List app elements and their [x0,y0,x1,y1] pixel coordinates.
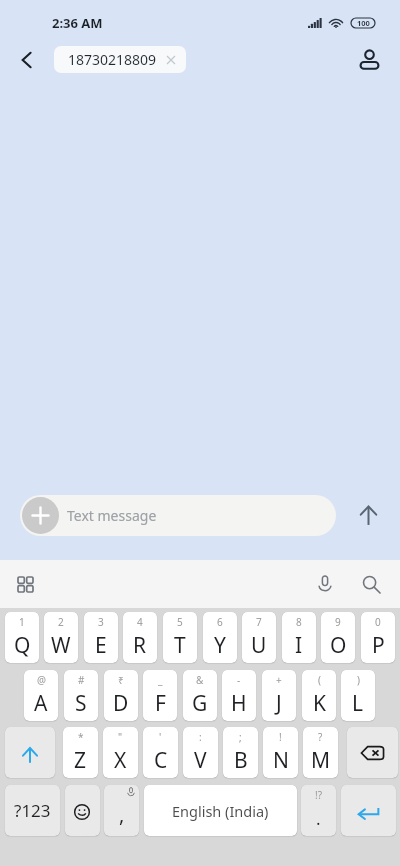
button[interactable]: 7 [242,612,276,663]
button[interactable]: 3 [84,612,118,663]
button[interactable]: ) [341,670,375,721]
button[interactable]: !? [301,785,336,836]
staticText: ?123 [14,799,51,822]
staticText: . [316,807,321,830]
button[interactable]: ₹ [104,670,138,721]
staticText: T [174,631,186,660]
button[interactable]: Search [354,567,388,601]
staticText: R [133,631,147,660]
staticText: 8 [296,615,302,629]
button[interactable]: Toolbox [8,567,42,601]
staticText: # [78,673,85,687]
button[interactable]: Voice input [308,567,342,601]
button[interactable]: # [64,670,98,721]
staticText: _ [158,673,163,687]
button[interactable]: Emoji [65,785,100,836]
staticText: 0 [375,615,381,629]
button[interactable]: , [104,785,139,836]
staticText: K [313,689,326,718]
button[interactable]: 2 [44,612,78,663]
staticText: Z [74,746,87,775]
button[interactable]: ( [302,670,336,721]
button[interactable]: English (India) [144,785,297,836]
staticText: B [234,746,248,775]
button[interactable]: Shift [5,727,55,778]
staticText: F [155,689,166,718]
button[interactable]: ? [303,727,338,778]
staticText: A [34,689,48,718]
staticText: X [114,746,127,775]
staticText: V [194,746,207,775]
staticText: ? [318,730,323,744]
staticText: ! [279,730,282,744]
staticText: 4 [137,615,143,629]
button[interactable]: ; [223,727,258,778]
button[interactable]: + [262,670,296,721]
button[interactable]: Backspace [347,727,398,778]
staticText: C [154,746,168,775]
staticText: H [231,689,247,718]
staticText: , [119,801,125,828]
staticText: W [51,631,71,660]
button[interactable]: 8 [282,612,316,663]
staticText: " [118,730,123,744]
staticText: 18730218809 [68,50,157,69]
staticText: 3 [98,615,104,629]
button[interactable]: Send [348,495,388,535]
button[interactable]: & [183,670,217,721]
staticText: D [113,689,129,718]
staticText: N [273,746,289,775]
staticText: 9 [335,615,341,629]
staticText: 2 [58,615,64,629]
staticText: P [372,631,385,660]
staticText: 7 [256,615,262,629]
staticText: M [311,746,331,775]
staticText: ( [318,673,321,687]
button[interactable]: Contact info [352,46,386,73]
staticText: ' [159,730,162,744]
staticText: * [78,730,84,744]
staticText: !? [315,788,323,802]
button[interactable]: @ [24,670,58,721]
staticText: Q [14,631,31,660]
button[interactable]: ! [263,727,298,778]
staticText: English (India) [172,801,269,821]
button[interactable]: 1 [5,612,39,663]
button[interactable]: ' [143,727,178,778]
button[interactable]: " [103,727,138,778]
staticText: Text message [67,506,157,525]
button[interactable]: _ [143,670,177,721]
staticText: 5 [177,615,183,629]
button[interactable]: 18730218809 [54,46,186,73]
button[interactable]: ?123 [5,785,60,836]
staticText: S [75,689,87,718]
button[interactable]: 6 [203,612,237,663]
staticText: G [192,689,208,718]
staticText: 100 [357,18,370,28]
staticText: @ [37,673,46,687]
staticText: - [237,673,241,687]
staticText: J [276,689,282,718]
staticText: : [199,730,202,744]
staticText: 2:36 AM [52,14,103,32]
staticText: L [352,689,364,718]
button[interactable]: * [63,727,98,778]
staticText: ) [357,673,360,687]
button[interactable]: Text message [20,495,336,536]
button[interactable]: 0 [361,612,395,663]
staticText: U [251,631,267,660]
staticText: + [276,673,282,687]
staticText: 1 [19,615,25,629]
staticText: 6 [217,615,223,629]
button[interactable]: Back [11,46,43,73]
staticText: & [196,673,204,687]
staticText: ; [239,730,242,744]
button[interactable]: 5 [163,612,197,663]
button[interactable]: : [183,727,218,778]
button[interactable]: - [222,670,256,721]
button[interactable]: 4 [123,612,157,663]
staticText: Y [214,631,226,660]
staticText: E [95,631,107,660]
button[interactable]: Enter [341,785,396,836]
button[interactable]: 9 [321,612,355,663]
